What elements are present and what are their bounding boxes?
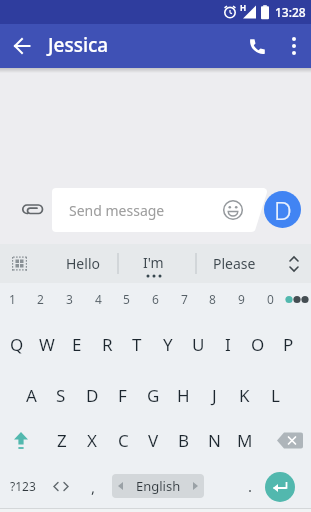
button[interactable]: Q — [0, 328, 47, 360]
button[interactable]: 6 — [125, 283, 185, 315]
button[interactable]: 2 — [10, 283, 70, 315]
staticText: English — [136, 477, 181, 495]
staticText: M — [237, 429, 253, 452]
button[interactable]: 7 — [154, 283, 214, 315]
staticText: D — [274, 193, 292, 227]
staticText: A — [26, 384, 37, 407]
button[interactable] — [265, 472, 295, 502]
button[interactable] — [47, 472, 75, 500]
button[interactable] — [4, 247, 34, 280]
button[interactable]: F — [92, 379, 152, 411]
button[interactable]: 3 — [39, 283, 99, 315]
staticText: Q — [10, 333, 24, 356]
staticText: 1 — [9, 291, 16, 307]
button[interactable]: D — [264, 191, 301, 228]
button[interactable] — [4, 424, 38, 456]
button[interactable]: B — [154, 424, 214, 456]
button[interactable]: I — [198, 328, 258, 360]
button[interactable]: Hello — [53, 247, 113, 279]
staticText: W — [39, 333, 55, 356]
button[interactable]: 1 — [0, 283, 42, 315]
staticText: T — [132, 333, 142, 356]
staticText: Jessica — [48, 32, 109, 58]
staticText: O — [251, 333, 265, 356]
button[interactable]: R — [77, 328, 137, 360]
button[interactable]: Please — [204, 247, 264, 279]
button[interactable]: U — [168, 328, 228, 360]
staticText: D — [86, 384, 99, 407]
staticText: V — [148, 429, 159, 452]
button[interactable]: L — [245, 379, 305, 411]
button[interactable] — [237, 24, 277, 68]
button[interactable]: P — [258, 328, 311, 360]
staticText: 5 — [123, 291, 130, 307]
staticText: 4 — [95, 291, 102, 307]
button[interactable] — [220, 197, 246, 223]
staticText: R — [102, 333, 113, 356]
button[interactable]: 5 — [96, 283, 156, 315]
button[interactable]: W — [17, 328, 77, 360]
staticText: H — [177, 384, 190, 407]
staticText: 8 — [209, 291, 216, 307]
staticText: N — [208, 429, 221, 452]
button[interactable] — [277, 24, 311, 68]
staticText: H — [240, 2, 247, 13]
staticText: 2 — [37, 291, 44, 307]
staticText: S — [56, 384, 66, 407]
button[interactable]: V — [123, 424, 183, 456]
button[interactable]: G — [123, 379, 183, 411]
staticText: K — [239, 384, 250, 407]
button[interactable]: J — [184, 379, 244, 411]
staticText: F — [118, 384, 127, 407]
staticText: B — [178, 429, 190, 452]
button[interactable]: A — [1, 379, 61, 411]
button[interactable]: . — [220, 470, 280, 502]
button[interactable]: 4 — [68, 283, 128, 315]
staticText: 3 — [66, 291, 73, 307]
staticText: X — [87, 429, 97, 452]
staticText: 13:28 — [275, 4, 306, 20]
staticText: 6 — [152, 291, 159, 307]
staticText: Hello — [66, 254, 100, 273]
button[interactable]: O — [228, 328, 288, 360]
button[interactable]: Z — [32, 424, 92, 456]
staticText: Please — [213, 254, 256, 273]
staticText: Z — [57, 429, 67, 452]
button[interactable]: T — [107, 328, 167, 360]
button[interactable]: Send message — [52, 188, 267, 232]
staticText: J — [212, 384, 217, 407]
button[interactable]: N — [184, 424, 244, 456]
button[interactable]: ?123 — [0, 470, 53, 502]
button[interactable] — [272, 424, 308, 456]
staticText: I — [225, 333, 231, 356]
button[interactable]: English — [112, 474, 204, 498]
staticText: U — [192, 333, 205, 356]
button[interactable]: 9 — [211, 283, 271, 315]
button[interactable]: D — [62, 379, 122, 411]
button[interactable]: 0 — [240, 283, 300, 315]
button[interactable]: Y — [138, 328, 198, 360]
staticText: Y — [163, 333, 173, 356]
button[interactable]: I'm — [123, 246, 183, 278]
button[interactable]: E — [47, 328, 107, 360]
button[interactable]: 8 — [182, 283, 242, 315]
staticText: . — [248, 476, 253, 496]
staticText: C — [118, 429, 129, 452]
button[interactable] — [18, 196, 48, 224]
button[interactable]: , — [63, 471, 123, 503]
staticText: I'm — [143, 253, 164, 272]
staticText: , — [91, 477, 96, 497]
staticText: G — [147, 384, 160, 407]
staticText: P — [283, 333, 294, 356]
button[interactable]: H — [153, 379, 213, 411]
staticText: 7 — [181, 291, 188, 307]
button[interactable]: C — [93, 424, 153, 456]
button[interactable]: M — [215, 424, 275, 456]
staticText: L — [271, 384, 280, 407]
button[interactable]: S — [31, 379, 91, 411]
button[interactable]: X — [62, 424, 122, 456]
staticText: 9 — [238, 291, 245, 307]
button[interactable]: K — [214, 379, 274, 411]
button[interactable] — [0, 24, 44, 68]
button[interactable] — [277, 244, 311, 283]
